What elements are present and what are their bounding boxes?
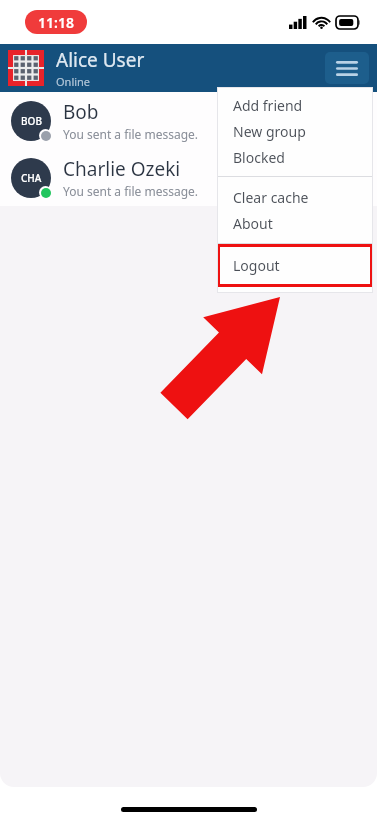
button[interactable]: Profile <box>8 50 44 86</box>
button[interactable]: BOB <box>0 92 377 149</box>
button[interactable]: Add friend <box>217 92 373 118</box>
staticText: Clear cache <box>233 188 309 207</box>
staticText: Bob <box>63 99 99 125</box>
staticText: You sent a file message. <box>63 183 199 199</box>
button[interactable]: About <box>217 210 373 236</box>
button[interactable]: Menu <box>325 52 369 84</box>
button[interactable]: CHA <box>0 149 377 206</box>
staticText: Add friend <box>233 96 303 115</box>
button[interactable]: Clear cache <box>217 184 373 210</box>
staticText: CHA <box>21 171 42 185</box>
staticText: New group <box>233 122 306 141</box>
staticText: Alice User <box>56 47 145 73</box>
button[interactable]: Blocked <box>217 144 373 170</box>
staticText: Online <box>56 74 91 89</box>
staticText: About <box>233 214 273 233</box>
staticText: Charlie Ozeki <box>63 156 181 182</box>
button[interactable]: Logout <box>217 244 373 287</box>
button[interactable]: New group <box>217 118 373 144</box>
staticText: 11:18 <box>38 13 74 32</box>
staticText: You sent a file message. <box>63 126 199 142</box>
staticText: Logout <box>233 256 280 275</box>
staticText: BOB <box>21 114 42 128</box>
staticText: Blocked <box>233 148 285 167</box>
